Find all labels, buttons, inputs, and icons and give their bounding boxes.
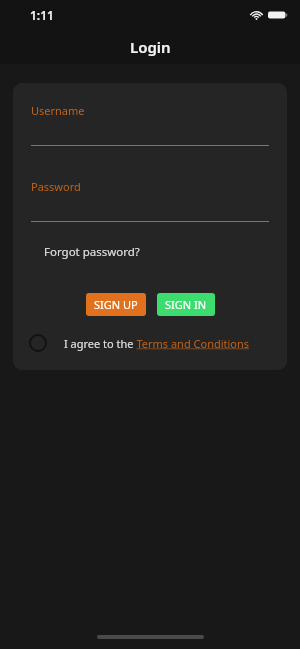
staticText: Password: [31, 179, 81, 194]
staticText: Login: [130, 37, 171, 57]
staticText: Forgot password?: [44, 244, 140, 260]
button[interactable]: SIGN UP: [86, 293, 146, 316]
staticText: SIGN IN: [165, 297, 207, 312]
staticText: 1:11: [30, 7, 54, 23]
button[interactable]: SIGN IN: [157, 293, 215, 316]
staticText: Username: [31, 103, 85, 118]
button[interactable]: Forgot password?: [44, 242, 140, 262]
staticText: I agree to the Terms and Conditions: [64, 336, 250, 351]
button[interactable]: Agree to terms and conditions: [25, 330, 51, 356]
button[interactable]: I agree to the Terms and Conditions: [64, 334, 250, 353]
staticText: SIGN UP: [94, 297, 138, 312]
